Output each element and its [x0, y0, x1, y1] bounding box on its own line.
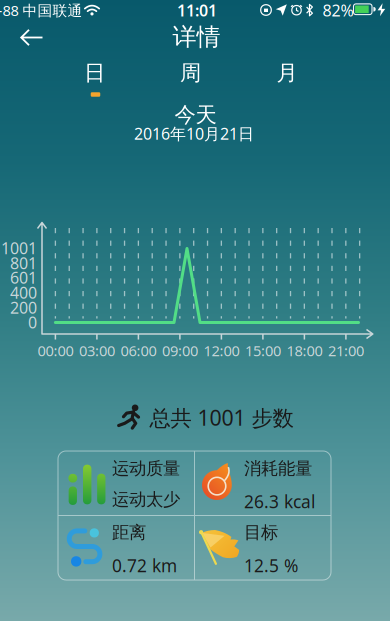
staticText: 601 [10, 267, 37, 288]
staticText: 03:00 [79, 341, 115, 360]
staticText: 2016年10月21日 [134, 123, 254, 144]
button[interactable]: Back [20, 28, 44, 47]
staticText: 11:01 [177, 0, 217, 21]
button[interactable]: 月 [257, 60, 317, 86]
staticText: 18:00 [286, 341, 322, 360]
staticText: 12:00 [203, 341, 239, 360]
staticText: 今天 [174, 102, 216, 128]
staticText: 距离 [112, 522, 146, 543]
staticText: 0 [28, 312, 37, 333]
staticText: 月 [276, 60, 297, 86]
button[interactable]: 日 [64, 60, 124, 86]
staticText: 运动太少 [112, 489, 180, 510]
staticText: 1001 [1, 237, 37, 259]
staticText: 00:00 [37, 341, 73, 360]
staticText: 详情 [172, 22, 220, 52]
staticText: 总共 1001 步数 [149, 403, 293, 432]
staticText: 26.3 kcal [244, 490, 315, 513]
staticText: 09:00 [162, 341, 198, 360]
staticText: 400 [10, 282, 37, 303]
staticText: 15:00 [245, 341, 281, 360]
staticText: 日 [84, 60, 105, 86]
staticText: -88 中国联通 [0, 1, 82, 20]
staticText: 06:00 [120, 341, 156, 360]
staticText: 目标 [244, 522, 278, 543]
staticText: 200 [10, 297, 37, 318]
staticText: 周 [180, 60, 201, 86]
staticText: 12.5 % [244, 554, 298, 577]
staticText: 0.72 km [112, 554, 177, 577]
staticText: 运动质量 [112, 458, 180, 479]
staticText: 21:00 [328, 341, 364, 360]
button[interactable]: 周 [160, 60, 220, 86]
staticText: 801 [10, 252, 37, 274]
staticText: 82% [322, 0, 353, 21]
staticText: 消耗能量 [244, 458, 312, 479]
